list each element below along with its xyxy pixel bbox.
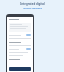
button[interactable] [9, 23, 31, 32]
staticText: Integrated digital [20, 2, 45, 6]
button[interactable] [26, 48, 31, 50]
staticText: customer onboarding [23, 7, 42, 9]
button[interactable] [26, 34, 31, 36]
button[interactable] [9, 67, 31, 71]
